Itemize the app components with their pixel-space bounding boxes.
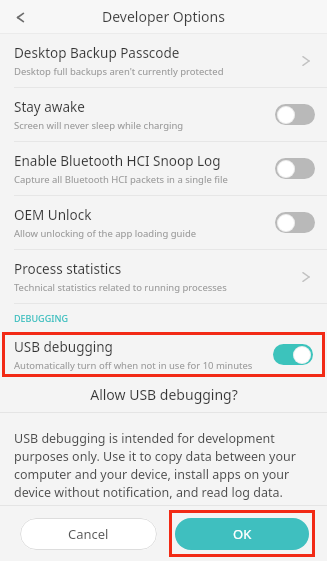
staticText: Process statistics [14, 260, 122, 278]
button[interactable]: OK [175, 518, 309, 550]
staticText: OEM Unlock [14, 206, 92, 224]
staticText: Cancel [68, 525, 109, 543]
staticText: Developer Options [102, 7, 225, 26]
button[interactable]: USB debugging [2, 332, 325, 377]
staticText: Desktop full backups aren't currently pr… [14, 65, 224, 78]
staticText: Desktop Backup Passcode [14, 44, 180, 62]
button[interactable]: Stay awake [0, 88, 327, 141]
staticText: Allow USB debugging? [90, 385, 238, 404]
staticText: Enable Bluetooth HCI Snoop Log [14, 152, 221, 170]
staticText: Automatically turn off when not in use f… [14, 359, 253, 372]
button[interactable]: Cancel [20, 518, 157, 550]
button[interactable] [273, 344, 313, 365]
button[interactable] [275, 104, 315, 125]
button[interactable] [275, 158, 315, 179]
staticText: Screen will never sleep while charging [14, 119, 184, 132]
button[interactable]: OEM Unlock [0, 196, 327, 249]
staticText: Capture all Bluetooth HCI packets in a s… [14, 173, 228, 186]
button[interactable]: Desktop Backup Passcode [0, 34, 327, 87]
staticText: USB debugging [14, 338, 113, 356]
button[interactable] [275, 212, 315, 233]
button[interactable]: Process statistics [0, 250, 327, 303]
staticText: DEBUGGING [14, 312, 68, 324]
staticText: Allow unlocking of the app loading guide [14, 227, 197, 240]
staticText: Technical statistics related to running … [14, 281, 227, 294]
staticText: USB debugging is intended for developmen… [14, 430, 313, 501]
button[interactable]: Back [6, 3, 34, 31]
staticText: Stay awake [14, 98, 85, 116]
button[interactable]: Enable Bluetooth HCI Snoop Log [0, 142, 327, 195]
staticText: OK [233, 525, 252, 543]
